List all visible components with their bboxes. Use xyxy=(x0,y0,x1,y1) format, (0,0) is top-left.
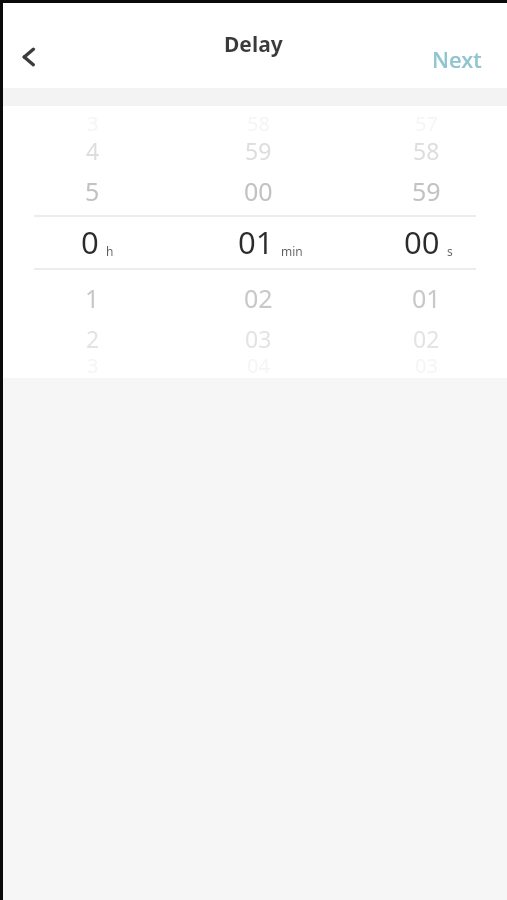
staticText: 01 xyxy=(412,281,441,315)
staticText: s xyxy=(447,243,453,259)
staticText: 00 xyxy=(244,174,273,208)
staticText: h xyxy=(106,243,114,259)
staticText: 04 xyxy=(247,352,270,379)
staticText: 02 xyxy=(413,323,440,354)
staticText: 03 xyxy=(245,323,272,354)
staticText: 3 xyxy=(87,110,99,137)
staticText: 03 xyxy=(415,352,438,379)
staticText: 3 xyxy=(87,352,99,379)
staticText: 01 xyxy=(238,221,274,263)
staticText: 57 xyxy=(415,110,438,137)
staticText: 58 xyxy=(247,110,270,137)
staticText: min xyxy=(281,243,303,259)
staticText: 2 xyxy=(86,323,100,354)
button[interactable]: 00 xyxy=(404,221,453,263)
staticText: 59 xyxy=(245,135,272,166)
staticText: 4 xyxy=(86,135,100,166)
staticText: 59 xyxy=(412,174,441,208)
staticText: Next xyxy=(432,44,482,74)
staticText: 5 xyxy=(85,174,100,208)
button[interactable]: Next xyxy=(424,36,490,82)
staticText: 02 xyxy=(244,281,273,315)
staticText: 00 xyxy=(404,221,440,263)
button[interactable]: 0 xyxy=(81,221,114,263)
staticText: 0 xyxy=(81,221,99,263)
button[interactable]: 01 xyxy=(238,221,303,263)
staticText: 1 xyxy=(85,281,100,315)
button[interactable]: Back xyxy=(6,34,52,80)
staticText: 58 xyxy=(413,135,440,166)
staticText: Delay xyxy=(224,30,283,59)
